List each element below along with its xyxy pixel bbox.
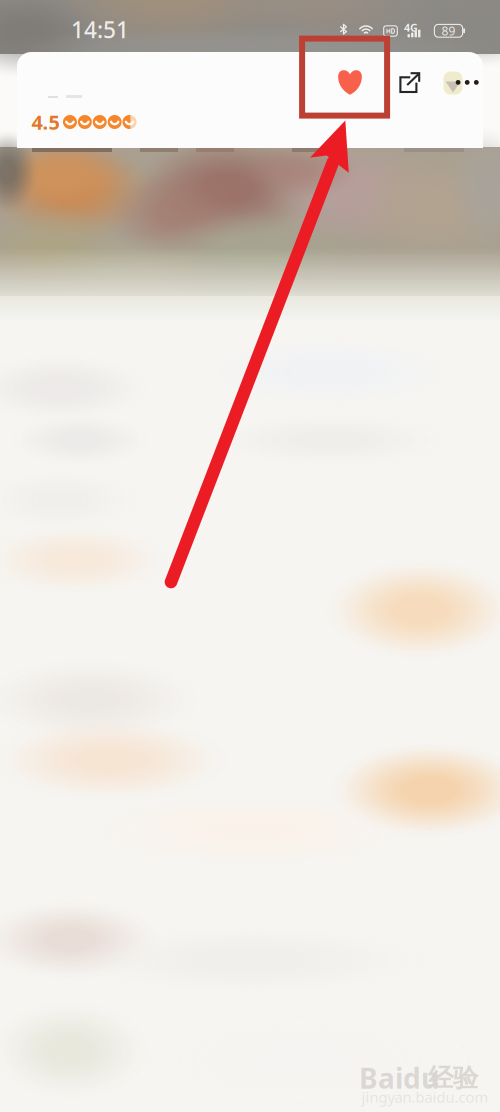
staticText: 4G	[404, 20, 418, 35]
staticText: Baidu	[359, 1059, 439, 1097]
button[interactable]: More options	[437, 59, 489, 105]
staticText: jingyan.baidu.com	[361, 1087, 488, 1107]
staticText: 经验	[428, 1062, 478, 1093]
staticText: 89	[441, 23, 455, 39]
staticText: 14:51	[71, 14, 129, 44]
button[interactable]: Share	[386, 60, 432, 106]
staticText: 4.5	[31, 109, 59, 135]
button[interactable]: Favorite	[321, 53, 379, 111]
